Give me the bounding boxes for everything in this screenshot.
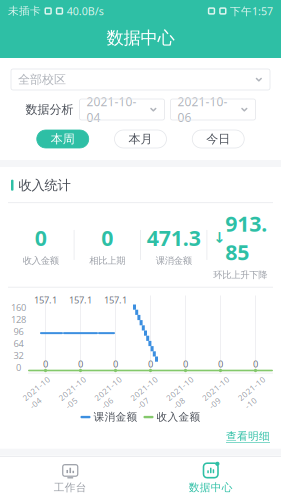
staticText: 0 <box>183 358 188 370</box>
staticText: 32 <box>13 349 23 362</box>
staticText: 157.1 <box>104 294 127 306</box>
staticText: 64 <box>13 337 23 350</box>
staticText: 本周 <box>51 132 75 146</box>
staticText: 0 <box>78 358 83 370</box>
staticText: 2021-10-05 <box>59 382 92 403</box>
staticText: 本月 <box>128 132 152 146</box>
staticText: 收入金额 <box>156 410 200 424</box>
staticText: 157.1 <box>34 294 57 306</box>
staticText: 全部校区 <box>18 72 66 87</box>
staticText: 40.0B/s <box>67 4 104 18</box>
button[interactable]: 工作台 <box>0 457 140 499</box>
staticText: 环比上升下降 <box>213 269 267 280</box>
staticText: 96 <box>13 325 23 338</box>
staticText: 未插卡 <box>8 4 41 17</box>
button[interactable]: 数据中心 <box>140 457 281 499</box>
staticText: 相比上期 <box>89 255 125 266</box>
staticText: 课消金额 <box>93 410 137 424</box>
button[interactable]: 查看明细 <box>0 424 281 449</box>
staticText: 工作台 <box>54 481 87 494</box>
button[interactable]: 2021-10-04 <box>79 99 164 120</box>
staticText: 2021-10-04 <box>86 94 136 125</box>
staticText: 0 <box>148 358 153 370</box>
staticText: 数据分析 <box>25 102 73 117</box>
staticText: 2021-10-04 <box>23 382 56 403</box>
staticText: 数据中心 <box>106 27 174 49</box>
staticText: 160 <box>11 301 26 314</box>
button[interactable]: 今日 <box>192 130 244 148</box>
button[interactable]: 本周 <box>37 130 89 148</box>
staticText: 471.3 <box>147 223 201 252</box>
staticText: 查看明细 <box>226 430 270 443</box>
staticText: 2021-10-08 <box>167 382 200 403</box>
staticText: 0 <box>43 358 48 370</box>
staticText: 157.1 <box>69 294 92 306</box>
button[interactable]: 本月 <box>114 130 166 148</box>
staticText: 0 <box>35 223 47 252</box>
staticText: 2021-10-07 <box>131 382 164 403</box>
staticText: 128 <box>11 313 26 326</box>
staticText: 数据中心 <box>189 481 233 494</box>
staticText: 收入金额 <box>23 255 59 266</box>
staticText: 913.85 <box>225 209 267 266</box>
staticText: 0 <box>16 361 21 374</box>
staticText: 课消金额 <box>156 255 192 266</box>
staticText: 2021-10-09 <box>203 382 236 403</box>
staticText: 下午1:57 <box>230 4 273 18</box>
staticText: 0 <box>218 358 223 370</box>
staticText: 2021-10-06 <box>177 94 227 125</box>
staticText: 0 <box>101 223 113 252</box>
button[interactable]: 2021-10-06 <box>170 99 255 120</box>
staticText: 0 <box>113 358 118 370</box>
button[interactable]: 全部校区 <box>11 69 270 90</box>
staticText: 2021-10-10 <box>239 382 272 403</box>
staticText: 今日 <box>206 132 230 146</box>
staticText: 收入统计 <box>18 177 70 193</box>
staticText: 0 <box>253 358 258 370</box>
staticText: 课消统计 <box>18 466 70 482</box>
staticText: 2021-10-06 <box>95 382 128 403</box>
staticText: ↓ <box>213 229 225 246</box>
